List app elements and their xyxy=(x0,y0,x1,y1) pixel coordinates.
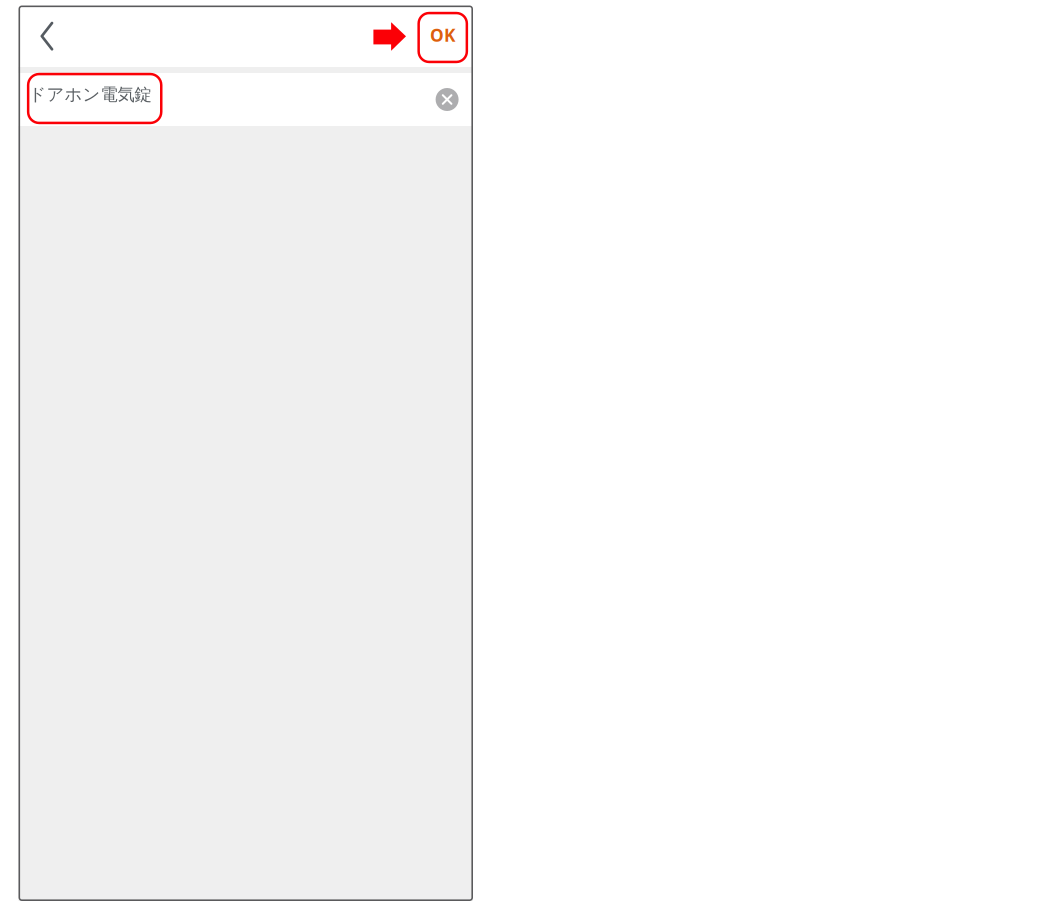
button[interactable]: OK xyxy=(419,11,468,62)
button[interactable]: Back xyxy=(18,5,67,67)
button[interactable]: Clear text xyxy=(426,75,468,124)
staticText: ドアホン電気錠 xyxy=(28,84,151,105)
staticText: OK xyxy=(430,23,456,46)
